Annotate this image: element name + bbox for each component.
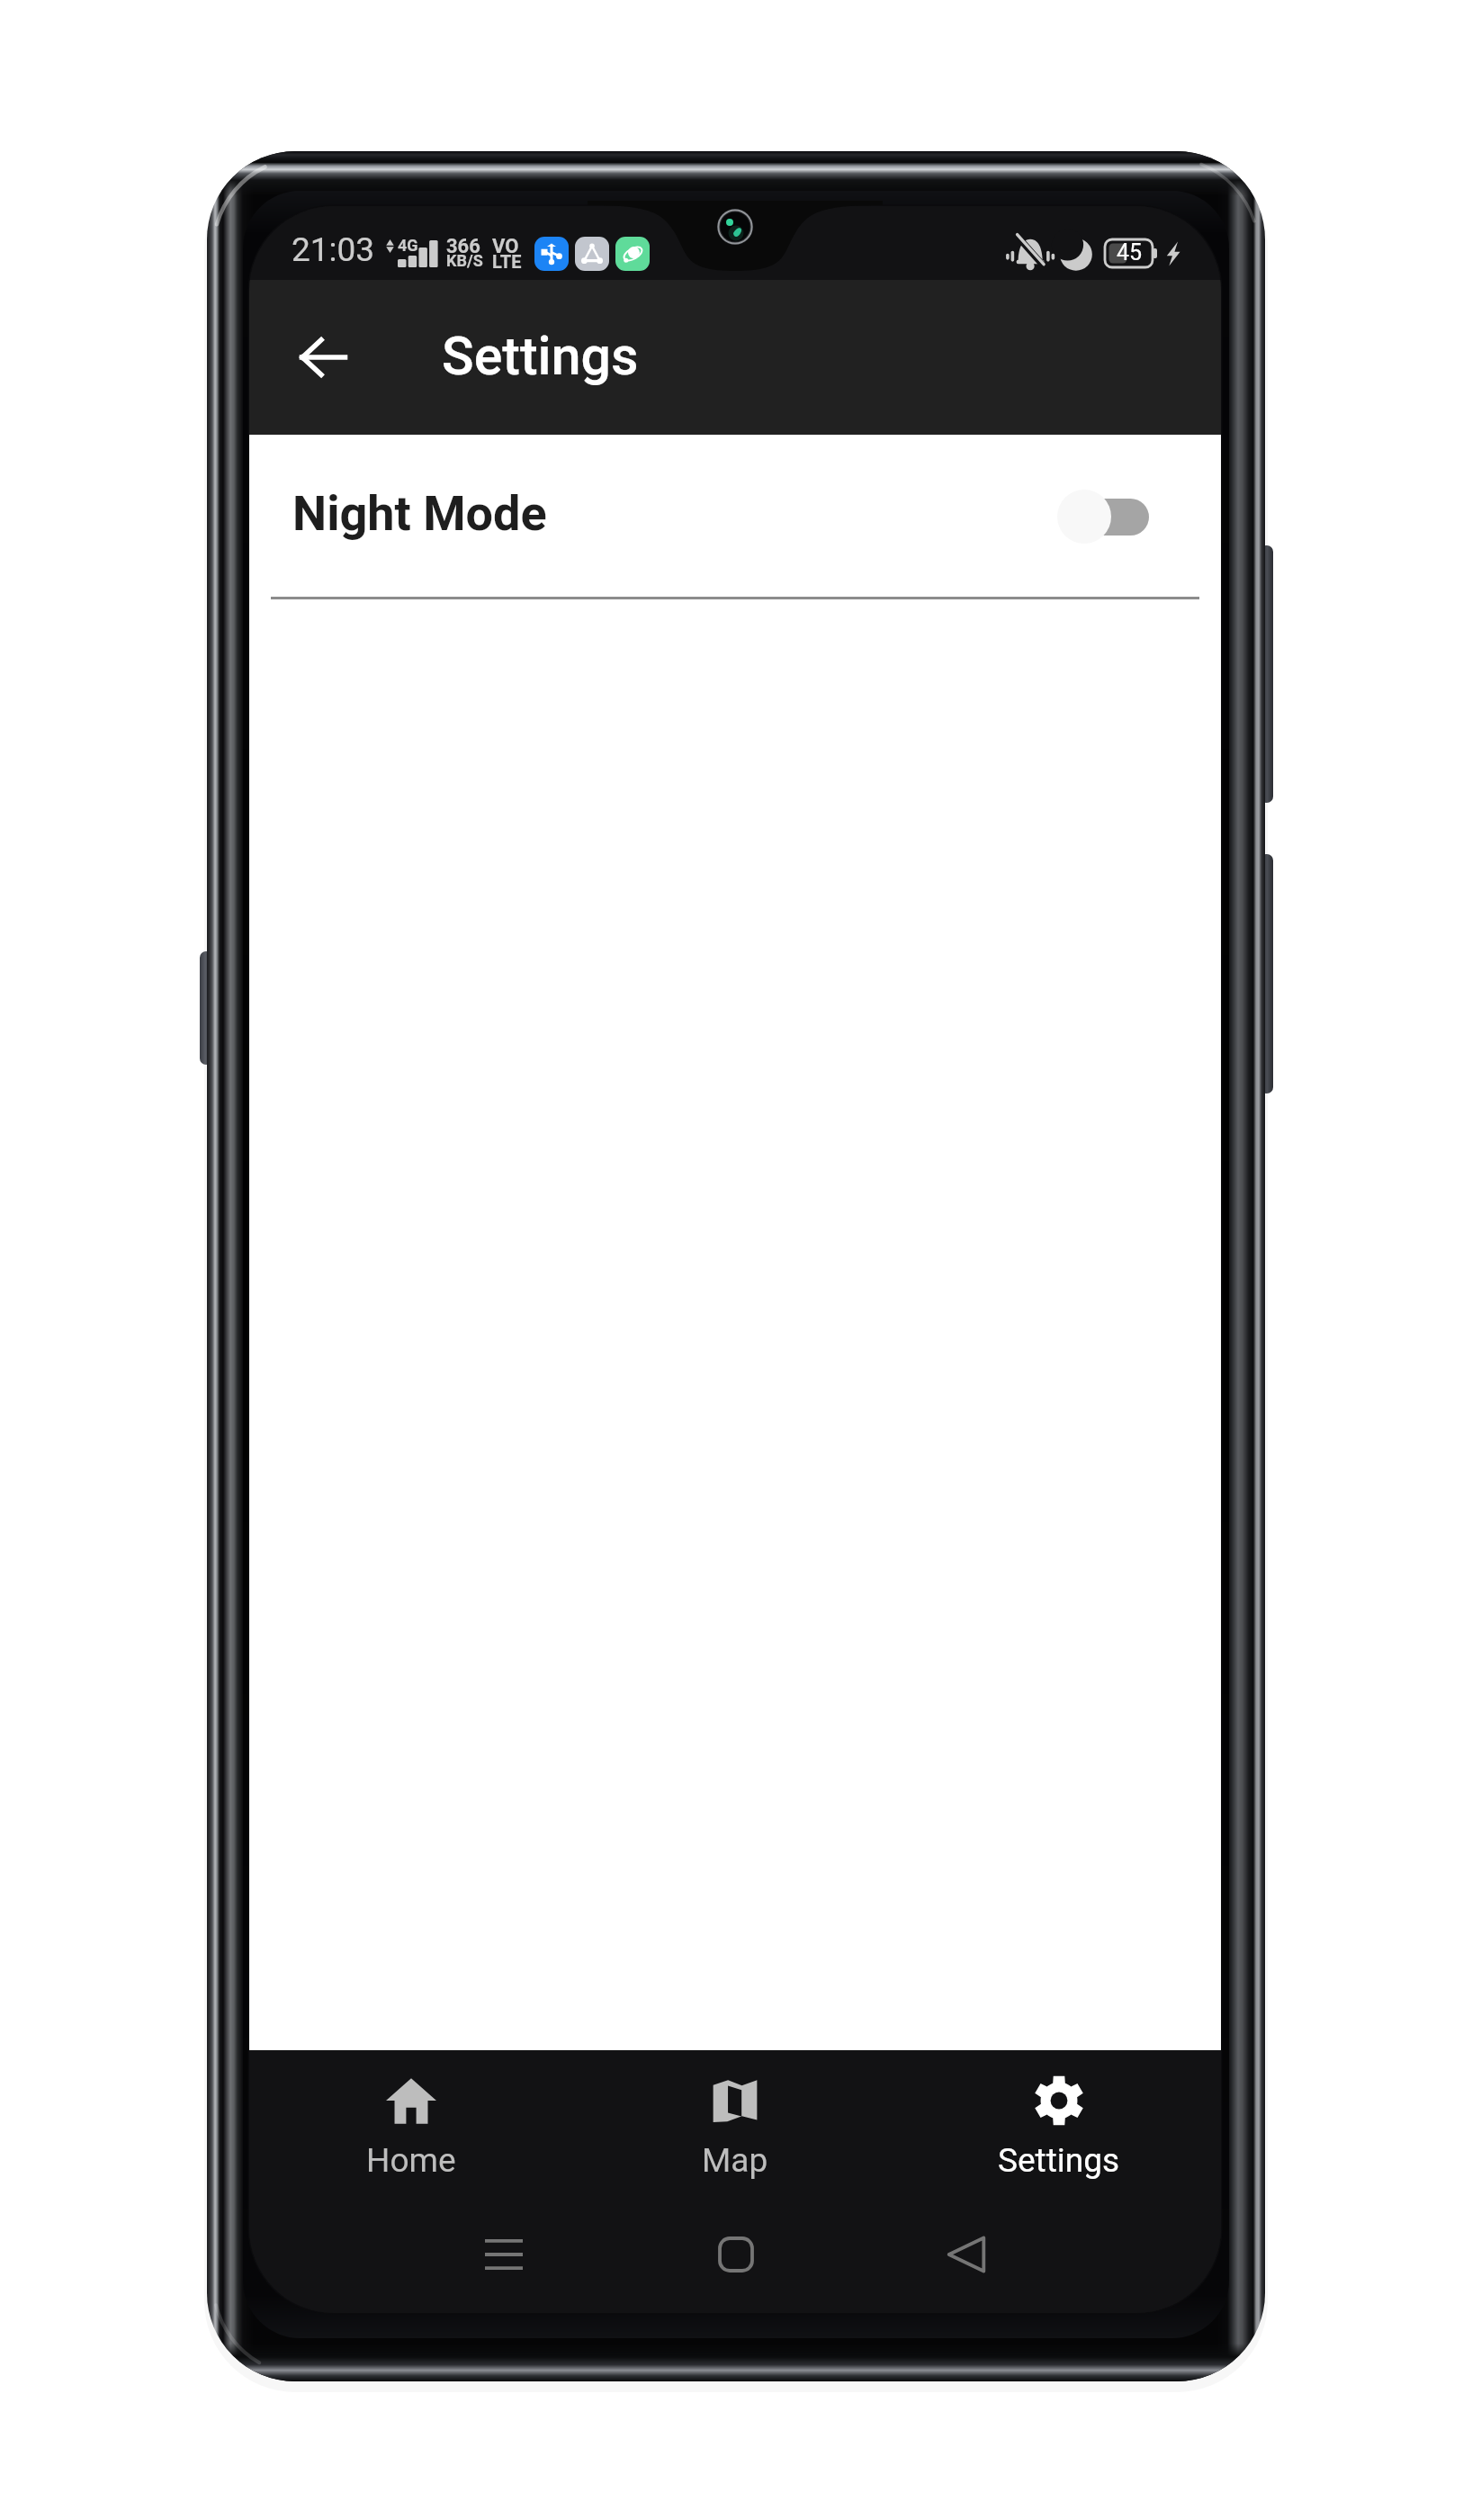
button[interactable]: Map <box>573 2050 897 2209</box>
button[interactable]: Night Mode <box>249 435 1221 598</box>
button[interactable]: Settings <box>897 2050 1221 2209</box>
button[interactable]: Recents <box>477 2227 531 2281</box>
staticText: 4G <box>398 236 418 255</box>
staticText: Settings <box>442 325 639 387</box>
button[interactable]: Back <box>939 2227 993 2281</box>
staticText: Home <box>366 2141 456 2180</box>
staticText: VO <box>492 235 519 258</box>
staticText: Settings <box>998 2141 1120 2180</box>
staticText: 21:03 <box>292 230 375 269</box>
staticText: Night Mode <box>292 485 547 542</box>
button[interactable]: Night Mode toggle <box>1068 489 1149 544</box>
button[interactable]: Navigate up <box>274 309 372 406</box>
staticText: KB/S <box>446 251 483 270</box>
button[interactable]: Home <box>709 2227 763 2281</box>
staticText: LTE <box>492 251 522 272</box>
staticText: 366 <box>446 235 480 258</box>
button[interactable]: Home <box>249 2050 573 2209</box>
staticText: 45 <box>1117 239 1143 265</box>
staticText: Map <box>702 2141 768 2180</box>
